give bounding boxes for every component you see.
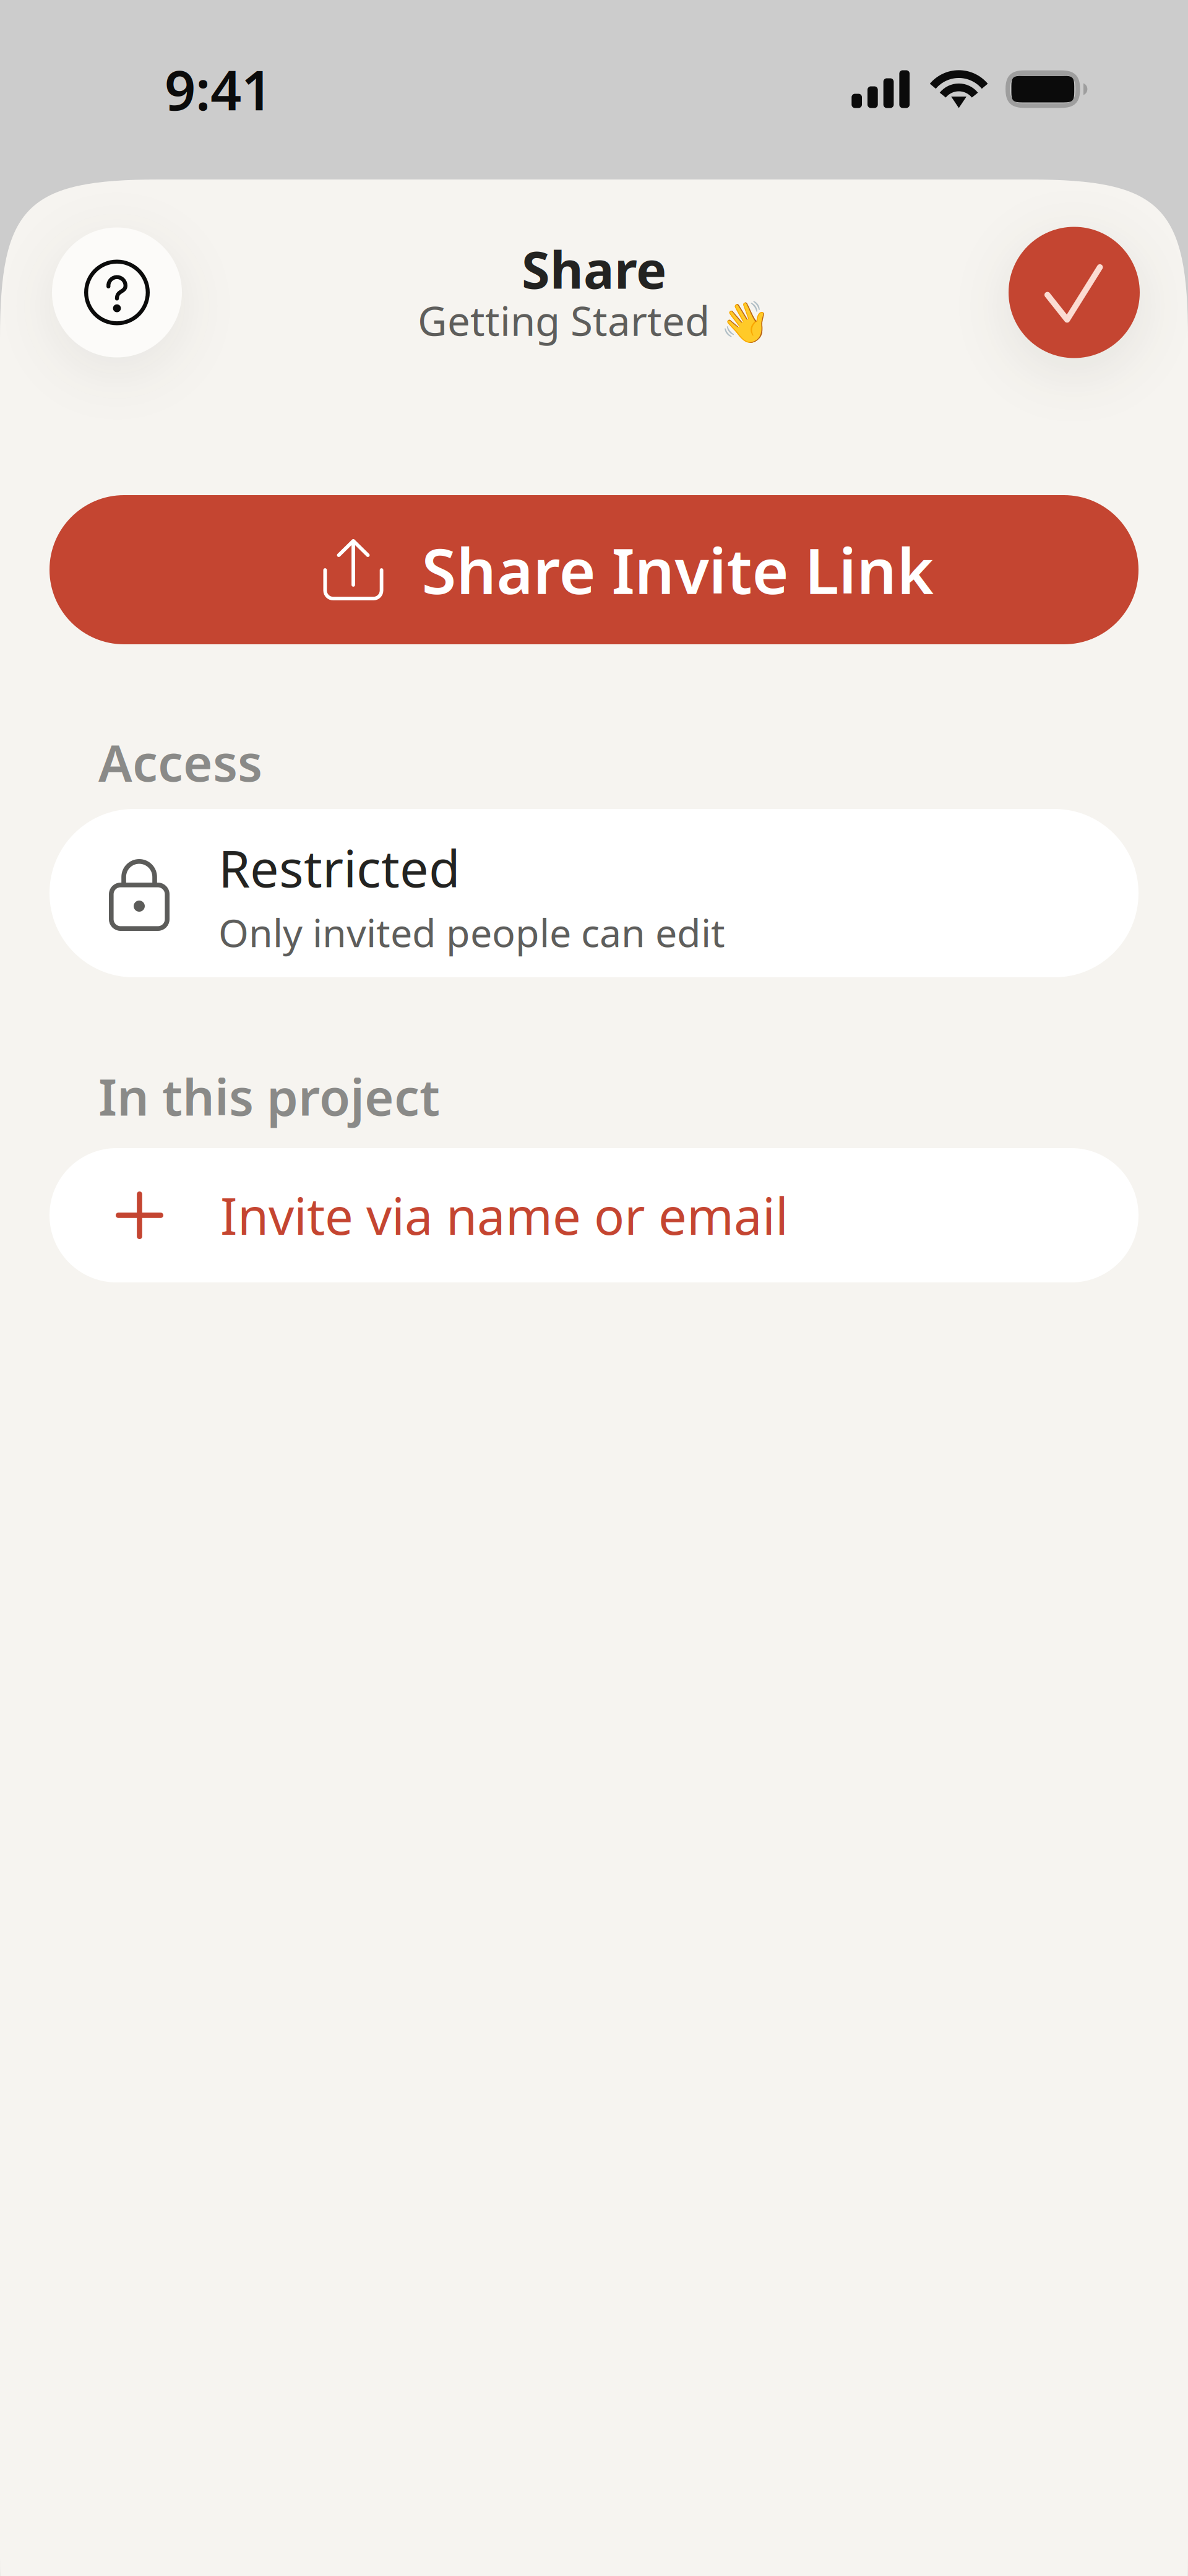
staticText: Restricted bbox=[218, 833, 460, 901]
staticText: Share bbox=[522, 235, 666, 303]
staticText: Access bbox=[98, 728, 262, 795]
staticText: Only invited people can edit bbox=[218, 906, 725, 958]
staticText: 9:41 bbox=[165, 53, 272, 125]
staticText: In this project bbox=[98, 1063, 440, 1130]
staticText: Share Invite Link bbox=[422, 528, 934, 611]
button[interactable]: Invite via name or email bbox=[49, 1148, 1138, 1282]
staticText: Getting Started 👋 bbox=[418, 293, 770, 347]
button[interactable]: Done bbox=[1009, 227, 1140, 358]
button[interactable]: Restricted bbox=[49, 809, 1138, 977]
button[interactable]: Share Invite Link bbox=[49, 495, 1138, 644]
button[interactable]: Help bbox=[52, 227, 182, 357]
staticText: Invite via name or email bbox=[220, 1182, 788, 1249]
